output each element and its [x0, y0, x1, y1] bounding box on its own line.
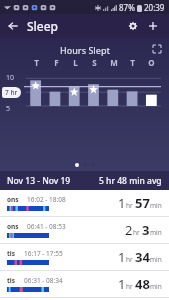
staticText: M: [110, 57, 118, 68]
staticText: min: [150, 282, 162, 291]
staticText: 1: [118, 194, 126, 212]
button[interactable]: tis: [0, 271, 169, 297]
staticText: ons: [7, 222, 19, 231]
staticText: 1: [118, 275, 126, 293]
button[interactable]: Add: [143, 16, 163, 36]
staticText: ons: [7, 195, 19, 204]
staticText: T: [34, 57, 39, 68]
staticText: min: [150, 255, 162, 264]
staticText: S: [92, 57, 97, 68]
button[interactable]: Back: [4, 17, 22, 35]
staticText: hr: [126, 255, 135, 264]
button[interactable]: ons: [0, 217, 169, 243]
staticText: Hours Slept: [60, 44, 110, 56]
staticText: 48: [135, 275, 150, 293]
button[interactable]: tis: [0, 244, 169, 270]
button[interactable]: Nov 13 - Nov 19: [7, 171, 162, 190]
staticText: 20:39: [144, 2, 165, 13]
staticText: L: [73, 57, 78, 68]
staticText: 06:31 - 08:34: [24, 276, 63, 285]
staticText: hr: [126, 201, 135, 210]
staticText: hr: [126, 282, 135, 291]
staticText: tis: [7, 249, 16, 258]
button[interactable]: Fullscreen: [149, 41, 165, 57]
staticText: hr: [133, 228, 142, 237]
staticText: 3: [142, 221, 150, 239]
staticText: min: [150, 201, 162, 210]
staticText: 16:17 - 17:55: [24, 249, 63, 258]
staticText: 2: [125, 221, 133, 239]
staticText: Sleep: [27, 18, 59, 34]
staticText: 16:02 - 18:08: [27, 195, 66, 204]
staticText: F: [54, 57, 59, 68]
staticText: 1: [118, 248, 126, 266]
staticText: min: [150, 228, 162, 237]
staticText: tis: [7, 276, 16, 285]
staticText: 7 hr: [5, 88, 18, 97]
staticText: Nov 13 - Nov 19: [7, 175, 71, 187]
staticText: 57: [135, 194, 150, 212]
button[interactable]: Settings: [123, 16, 143, 36]
staticText: 87%: [119, 2, 135, 13]
staticText: 5: [6, 104, 11, 114]
staticText: 34: [135, 248, 150, 266]
staticText: O: [148, 57, 155, 68]
button[interactable]: ons: [0, 190, 169, 216]
staticText: 5 hr 48 min avg: [99, 175, 162, 187]
staticText: T: [130, 57, 135, 68]
staticText: 10: [6, 73, 15, 83]
staticText: 06:41 - 08:53: [27, 222, 66, 231]
